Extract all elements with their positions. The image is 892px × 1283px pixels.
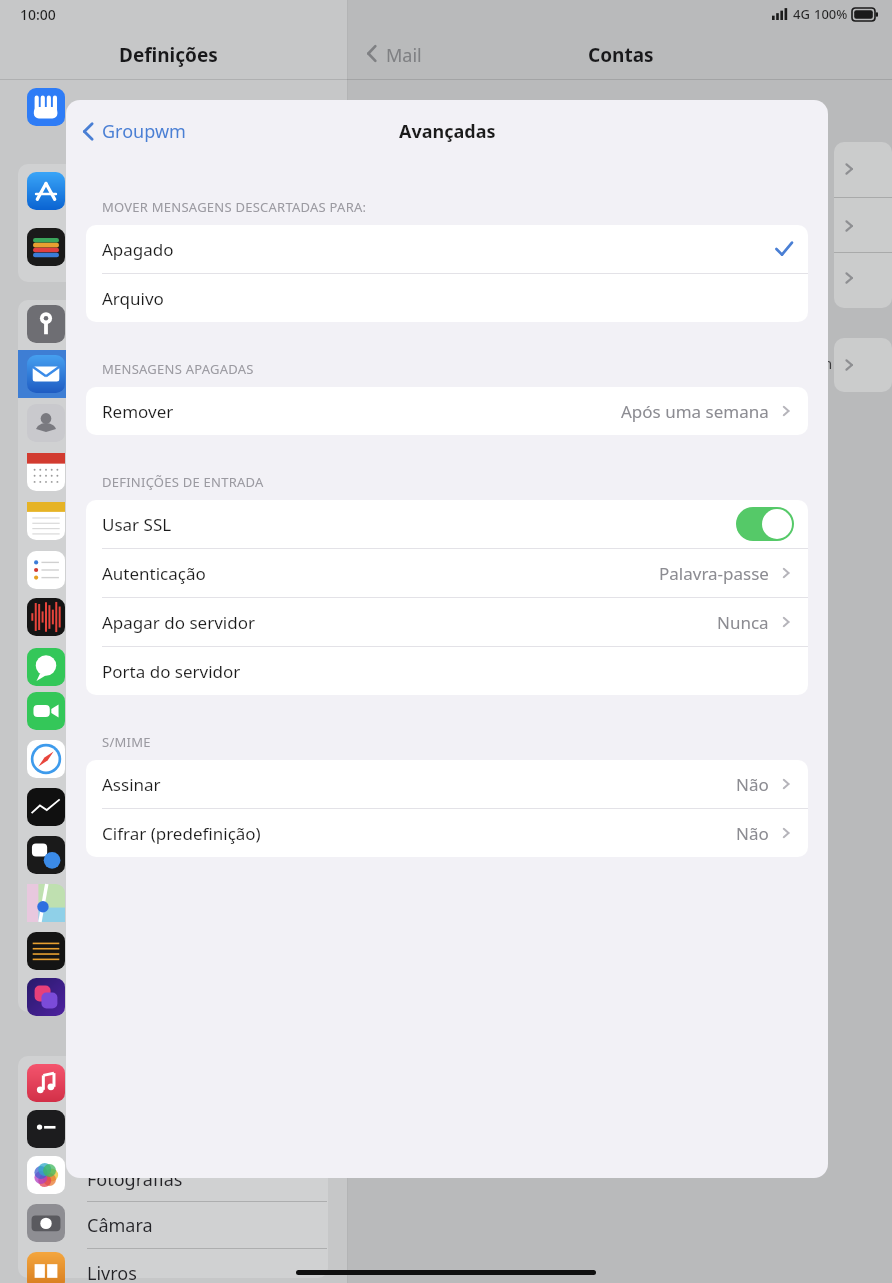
staticText: Apagado [102,238,174,261]
staticText: Nunca [717,611,769,634]
button[interactable]: Remover [86,387,808,435]
staticText: Autenticação [102,562,206,585]
staticText: 4G [793,5,810,23]
staticText: Remover [102,400,174,423]
staticText: Porta do servidor [102,660,241,683]
button[interactable]: Apagado [86,225,808,273]
staticText: Contas [588,42,654,68]
staticText: MOVER MENSAGENS DESCARTADAS PARA: [102,198,367,216]
button[interactable]: Porta do servidor [86,647,808,695]
button[interactable]: Usar SSL [86,500,808,548]
button[interactable]: Arquivo [86,274,808,322]
staticText: Fotografias [87,1167,183,1192]
staticText: Avançadas [399,119,496,144]
staticText: Assinar [102,773,161,796]
staticText: Usar SSL [102,513,172,536]
staticText: Groupwm [102,119,186,144]
staticText: Não [736,822,769,845]
staticText: 10:00 [20,5,56,24]
staticText: Definições [119,42,218,68]
staticText: n [823,353,833,373]
staticText: Após uma semana [621,400,769,423]
staticText: Não [736,773,769,796]
staticText: Livros [87,1261,137,1283]
staticText: Câmara [87,1213,153,1238]
staticText: Apagar do servidor [102,611,255,634]
button[interactable]: Assinar [86,760,808,808]
staticText: Arquivo [102,287,164,310]
button[interactable]: Apagar do servidor [86,598,808,646]
button[interactable]: Groupwm [74,113,194,150]
staticText: 100% [814,5,848,23]
button[interactable]: Usar SSL [736,507,794,541]
button[interactable]: Cifrar (predefinição) [86,809,808,857]
button[interactable]: Autenticação [86,549,808,597]
staticText: Palavra-passe [659,562,769,585]
staticText: S/MIME [102,733,151,751]
staticText: Cifrar (predefinição) [102,822,261,845]
staticText: DEFINIÇÕES DE ENTRADA [102,473,264,491]
staticText: MENSAGENS APAGADAS [102,360,254,378]
staticText: Mail [386,43,422,68]
